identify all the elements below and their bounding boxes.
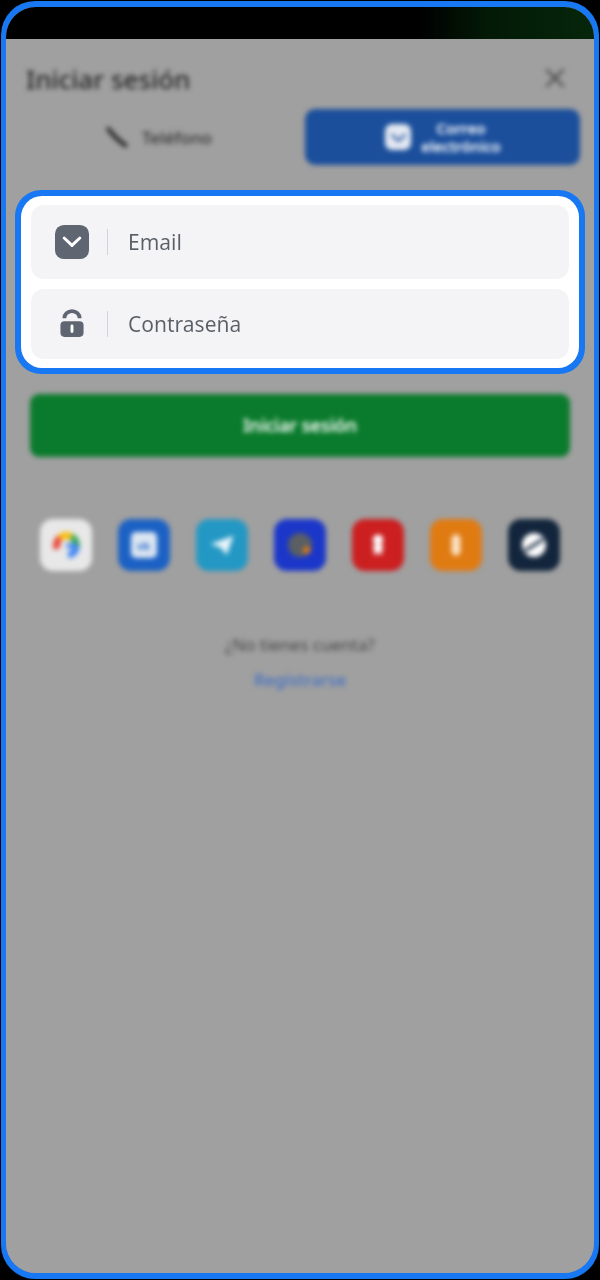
button[interactable]: Social login — [274, 519, 326, 571]
staticText: Iniciar sesión — [26, 61, 191, 96]
staticText: Iniciar sesión — [243, 413, 357, 438]
button[interactable]: Correo electrónico — [305, 109, 580, 165]
button[interactable]: Contraseña — [31, 289, 569, 359]
staticText: Email — [128, 228, 182, 257]
staticText: ¿No tienes cuenta? — [225, 633, 375, 656]
staticText: vk — [137, 538, 151, 553]
button[interactable]: Cerrar — [538, 61, 572, 95]
button[interactable]: Google login — [40, 519, 92, 571]
button[interactable]: Social login — [196, 519, 248, 571]
staticText: Teléfono — [142, 126, 212, 149]
staticText: Correo electrónico — [421, 118, 501, 157]
button[interactable]: Email — [31, 205, 569, 279]
button[interactable]: Regístrarse — [254, 668, 347, 691]
button[interactable]: Social login — [352, 519, 404, 571]
button[interactable]: Social login — [508, 519, 560, 571]
button[interactable]: Social login — [118, 519, 170, 571]
button[interactable]: ¿Olvidaste tu contraseña? — [363, 343, 572, 366]
button[interactable]: Social login — [430, 519, 482, 571]
staticText: Contraseña — [128, 310, 242, 339]
button[interactable]: Teléfono — [20, 109, 295, 165]
button[interactable]: Iniciar sesión — [30, 394, 570, 457]
